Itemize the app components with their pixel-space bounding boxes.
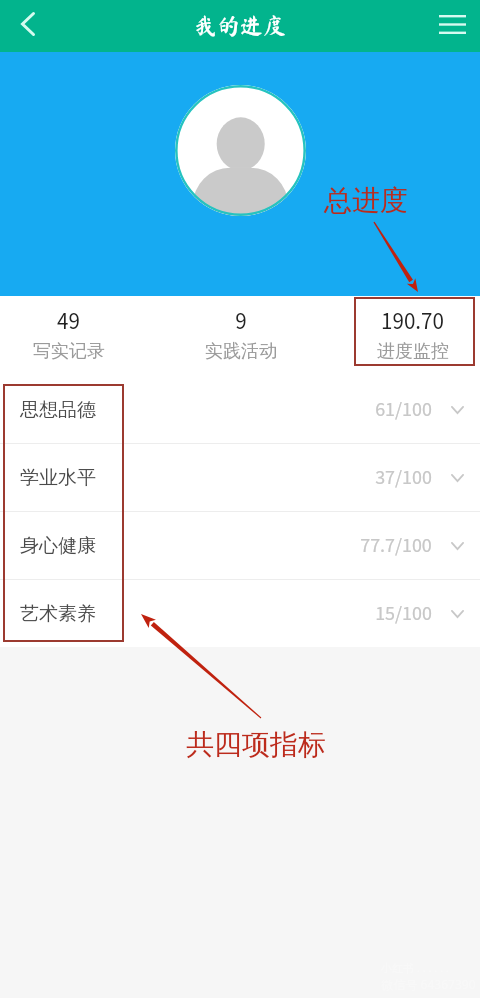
staticText: 61/100: [375, 396, 432, 424]
staticText: 学业水平: [20, 466, 96, 490]
staticText: 49: [57, 305, 80, 338]
button[interactable]: 9: [137, 296, 345, 376]
staticText: 身心健康: [20, 534, 96, 558]
button[interactable]: 学业水平: [0, 444, 480, 511]
button[interactable]: 49: [0, 296, 137, 376]
staticText: 9: [235, 305, 247, 338]
staticText: 190.70: [381, 305, 444, 338]
button[interactable]: 思想品德: [0, 376, 480, 443]
button[interactable]: 艺术素养: [0, 580, 480, 647]
staticText: 实践活动: [205, 340, 277, 363]
staticText: 进度监控: [377, 340, 449, 363]
staticText: 共四项指标: [186, 727, 326, 762]
button[interactable]: 190.70: [345, 296, 480, 376]
staticText: 77.7/100: [360, 532, 432, 560]
button[interactable]: 身心健康: [0, 512, 480, 579]
staticText: 总进度: [324, 183, 408, 218]
staticText: 写实记录: [33, 340, 105, 363]
button[interactable]: Menu: [431, 3, 473, 45]
button[interactable]: Back: [8, 4, 48, 44]
staticText: 15/100: [375, 600, 432, 628]
staticText: 我的进度: [194, 14, 286, 37]
staticText: 艺术素养: [20, 602, 96, 626]
staticText: 思想品德: [20, 398, 96, 422]
staticText: 37/100: [375, 464, 432, 492]
